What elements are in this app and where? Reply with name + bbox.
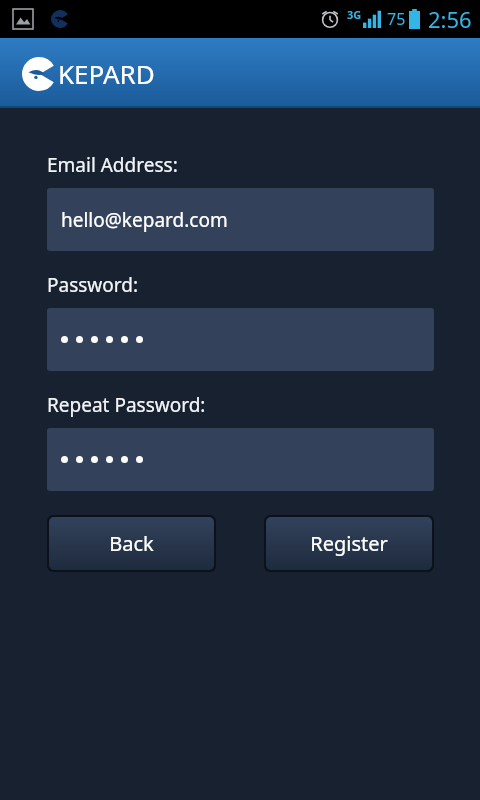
staticText: 3G (347, 7, 362, 22)
staticText: 75 (387, 8, 406, 30)
button[interactable]: hello@kepard.com (47, 188, 434, 251)
button[interactable] (47, 308, 434, 371)
button[interactable] (47, 428, 434, 491)
button[interactable]: Register (266, 517, 432, 570)
staticText: KEPARD (58, 56, 155, 91)
staticText: Register (310, 530, 388, 557)
staticText: Repeat Password: (47, 392, 206, 418)
staticText: hello@kepard.com (61, 207, 228, 233)
staticText: Email Address: (47, 152, 178, 178)
button[interactable]: Back (49, 517, 214, 570)
staticText: Password: (47, 272, 139, 298)
staticText: Back (109, 530, 154, 557)
staticText: 2:56 (428, 4, 472, 34)
